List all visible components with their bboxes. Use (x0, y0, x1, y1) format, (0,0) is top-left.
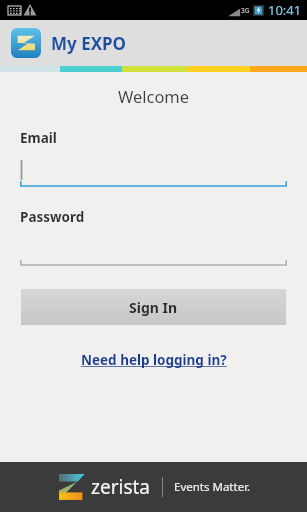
staticText: 10:41 (268, 1, 302, 19)
button[interactable]: Need help logging in? (77, 347, 231, 373)
staticText: My EXPO (51, 32, 127, 55)
staticText: 3G (241, 6, 250, 15)
staticText: Welcome (0, 85, 307, 107)
button[interactable] (20, 234, 287, 266)
staticText: Need help logging in? (81, 351, 227, 369)
button[interactable]: Sign In (21, 289, 286, 325)
button[interactable] (20, 155, 287, 187)
staticText: Password (20, 208, 85, 226)
staticText: Email (20, 129, 57, 147)
staticText: Sign In (129, 298, 178, 317)
staticText: Events Matter. (174, 479, 251, 495)
staticText: zerista (91, 474, 151, 500)
